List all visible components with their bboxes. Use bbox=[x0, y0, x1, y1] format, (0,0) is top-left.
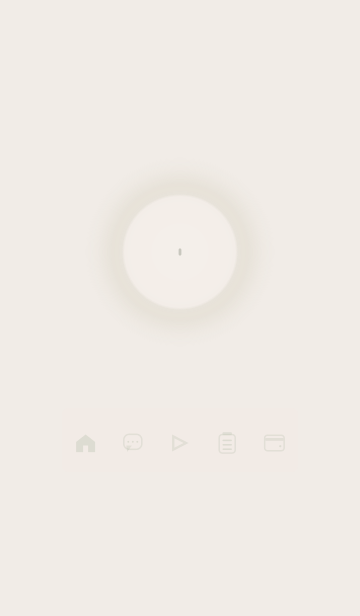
button[interactable]: Notes bbox=[204, 408, 251, 472]
button[interactable]: Home bbox=[62, 408, 109, 472]
button[interactable]: Wallet bbox=[251, 408, 298, 472]
